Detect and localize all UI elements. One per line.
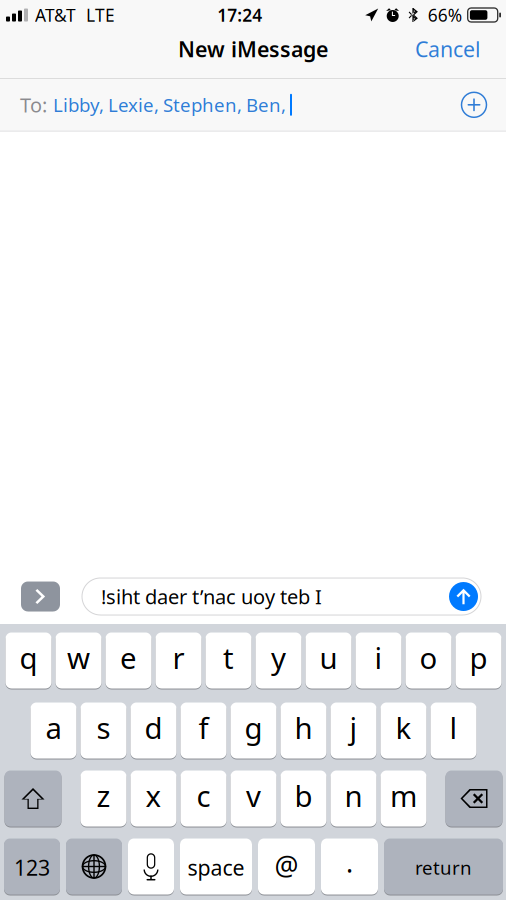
staticText: space <box>187 853 244 882</box>
button[interactable]: return <box>384 838 503 895</box>
staticText: New iMessage <box>178 35 328 63</box>
staticText: 66% <box>428 3 462 26</box>
staticText: e <box>120 638 137 677</box>
button[interactable]: j <box>330 702 376 759</box>
button[interactable]: d <box>130 702 176 759</box>
staticText: AT&T <box>35 3 76 26</box>
staticText: q <box>19 638 37 677</box>
staticText: x <box>145 776 161 815</box>
staticText: c <box>196 776 210 815</box>
staticText: b <box>294 776 312 815</box>
button[interactable]: Dictation <box>128 838 174 895</box>
staticText: !siht daer t’nac uoy teb I <box>101 583 322 610</box>
staticText: 123 <box>14 853 50 882</box>
staticText: . <box>346 845 353 880</box>
button[interactable]: l <box>430 702 476 759</box>
button[interactable]: b <box>280 770 326 827</box>
staticText: g <box>244 708 262 747</box>
button[interactable]: Add contact <box>452 83 496 127</box>
button[interactable]: t <box>205 632 251 689</box>
button[interactable]: Shift <box>4 770 61 827</box>
staticText: i <box>374 638 382 677</box>
staticText: a <box>45 708 61 747</box>
button[interactable]: o <box>405 632 451 689</box>
button[interactable]: q <box>5 632 51 689</box>
staticText: return <box>415 855 472 880</box>
button[interactable]: c <box>180 770 226 827</box>
button[interactable]: @ <box>258 838 315 895</box>
staticText: d <box>144 708 162 747</box>
button[interactable]: p <box>455 632 501 689</box>
button[interactable]: Apps <box>21 581 60 611</box>
button[interactable]: r <box>155 632 201 689</box>
staticText: Ben, <box>246 92 286 117</box>
staticText: u <box>319 638 337 677</box>
staticText: Stephen, <box>163 92 242 117</box>
button[interactable]: i <box>355 632 401 689</box>
staticText: t <box>223 638 234 677</box>
button[interactable]: f <box>180 702 226 759</box>
staticText: @ <box>274 848 298 883</box>
staticText: LTE <box>86 3 115 26</box>
button[interactable]: Next keyboard <box>66 838 122 895</box>
staticText: m <box>390 776 417 815</box>
staticText: p <box>469 638 487 677</box>
button[interactable]: . <box>321 838 378 895</box>
button[interactable]: a <box>30 702 76 759</box>
button[interactable]: u <box>305 632 351 689</box>
button[interactable]: e <box>105 632 151 689</box>
button[interactable]: x <box>130 770 176 827</box>
staticText: 17:24 <box>217 3 262 26</box>
button[interactable]: space <box>180 838 252 895</box>
staticText: f <box>198 708 208 747</box>
staticText: v <box>246 776 261 815</box>
staticText: Libby, <box>53 92 104 117</box>
staticText: Cancel <box>415 35 481 63</box>
button[interactable]: m <box>380 770 426 827</box>
button[interactable]: Cancel <box>404 32 492 76</box>
staticText: n <box>344 776 362 815</box>
staticText: h <box>294 708 312 747</box>
staticText: l <box>449 708 457 747</box>
button[interactable]: n <box>330 770 376 827</box>
staticText: z <box>96 776 110 815</box>
button[interactable]: k <box>380 702 426 759</box>
button[interactable]: v <box>230 770 276 827</box>
button[interactable]: Send <box>449 582 478 611</box>
staticText: y <box>271 638 286 677</box>
staticText: k <box>395 708 411 747</box>
button[interactable]: 123 <box>4 838 60 895</box>
button[interactable]: g <box>230 702 276 759</box>
button[interactable]: h <box>280 702 326 759</box>
staticText: s <box>96 708 110 747</box>
staticText: w <box>67 638 90 677</box>
button[interactable]: z <box>80 770 126 827</box>
button[interactable]: y <box>255 632 301 689</box>
button[interactable]: s <box>80 702 126 759</box>
button[interactable]: Delete <box>445 770 502 827</box>
staticText: To: <box>20 91 47 118</box>
staticText: Lexie, <box>108 92 159 117</box>
staticText: r <box>172 638 184 677</box>
staticText: j <box>349 708 357 747</box>
button[interactable]: w <box>55 632 101 689</box>
staticText: o <box>419 638 437 677</box>
